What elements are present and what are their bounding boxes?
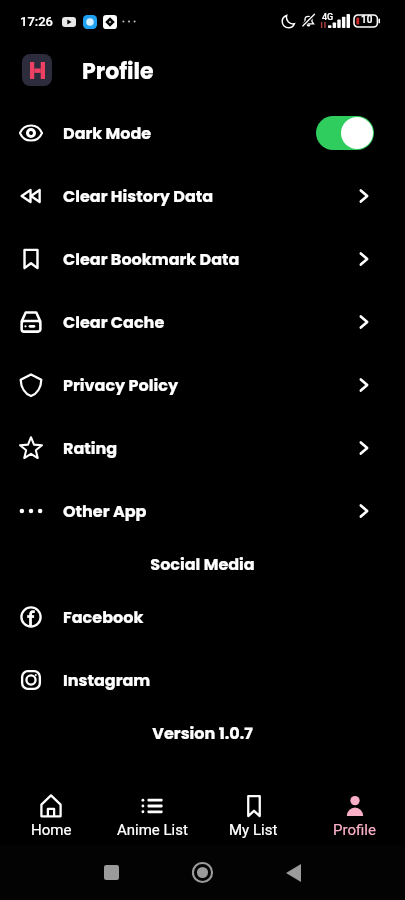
button[interactable]: My List <box>203 779 304 845</box>
button[interactable]: Rating <box>0 416 405 479</box>
staticText: Profile <box>82 56 154 87</box>
staticText: Home <box>31 821 72 839</box>
staticText: Other App <box>63 500 147 522</box>
button[interactable]: Facebook <box>0 585 405 648</box>
button[interactable]: Instagram <box>0 648 405 711</box>
staticText: Clear Cache <box>63 311 165 333</box>
button[interactable]: Dark Mode toggle <box>316 116 374 150</box>
staticText: 17:26 <box>20 14 54 29</box>
button[interactable]: Home <box>182 852 223 893</box>
staticText: Dark Mode <box>63 122 152 144</box>
staticText: Privacy Policy <box>63 374 179 396</box>
staticText: Rating <box>63 437 118 459</box>
staticText: Facebook <box>63 606 144 628</box>
staticText: Social Media <box>150 553 255 575</box>
staticText: My List <box>229 821 278 839</box>
staticText: Version 1.0.7 <box>152 722 253 744</box>
button[interactable]: Clear Cache <box>0 290 405 353</box>
button[interactable]: Other App <box>0 479 405 542</box>
button[interactable]: Clear History Data <box>0 164 405 227</box>
staticText: 10 <box>361 14 373 26</box>
staticText: Anime List <box>117 821 188 839</box>
button[interactable]: Anime List <box>102 779 203 845</box>
button[interactable]: Home <box>0 779 102 845</box>
staticText: 4G <box>322 12 334 23</box>
staticText: Profile <box>333 821 376 839</box>
staticText: Instagram <box>63 669 151 691</box>
staticText: Clear History Data <box>63 185 214 207</box>
button[interactable]: Privacy Policy <box>0 353 405 416</box>
button[interactable]: Profile <box>304 779 405 845</box>
button[interactable]: Dark Mode <box>0 101 405 164</box>
button[interactable]: Recent apps <box>91 852 132 893</box>
button[interactable]: Clear Bookmark Data <box>0 227 405 290</box>
staticText: Clear Bookmark Data <box>63 248 240 270</box>
button[interactable]: Back <box>273 852 314 893</box>
